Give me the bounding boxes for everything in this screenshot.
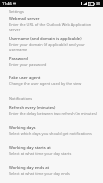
button[interactable]: Working day starts at xyxy=(0,145,103,156)
staticText: Refresh every (minutes) xyxy=(9,105,56,111)
staticText: Fake user agent xyxy=(9,75,41,81)
staticText: Enter the delay between two refresh (in … xyxy=(9,111,97,116)
button[interactable]: Working day ends at xyxy=(0,165,103,176)
staticText: Webmail server xyxy=(9,16,40,22)
staticText: Working days xyxy=(9,125,36,131)
staticText: Change the user agent used by the view xyxy=(9,81,82,86)
staticText: Enter the URL of the Outlook Web Applica… xyxy=(9,22,100,32)
staticText: 30 xyxy=(96,1,101,6)
staticText: Settings xyxy=(9,9,24,14)
staticText: Enter your password xyxy=(9,62,47,67)
staticText: Notifications xyxy=(9,96,33,101)
staticText: Working day ends at xyxy=(9,165,50,171)
staticText: Select at what time your day ends xyxy=(9,171,70,176)
button[interactable]: Webmail server xyxy=(0,16,103,32)
button[interactable]: Working days xyxy=(0,125,103,136)
button[interactable]: Password xyxy=(0,56,103,67)
staticText: Enter your domain (if applicable) and yo… xyxy=(9,42,100,52)
button[interactable]: Refresh every (minutes) xyxy=(0,105,103,116)
button[interactable]: Fake user agent xyxy=(0,75,103,86)
staticText: Select which days you should get notific… xyxy=(9,131,92,136)
staticText: Password xyxy=(9,56,28,62)
staticText: Working day starts at xyxy=(9,145,51,151)
button[interactable]: Username (and domain is applicable) xyxy=(0,36,103,52)
staticText: Select at what time your day starts xyxy=(9,151,72,156)
staticText: 11:46 xyxy=(2,1,12,6)
staticText: Username (and domain is applicable) xyxy=(9,36,82,42)
